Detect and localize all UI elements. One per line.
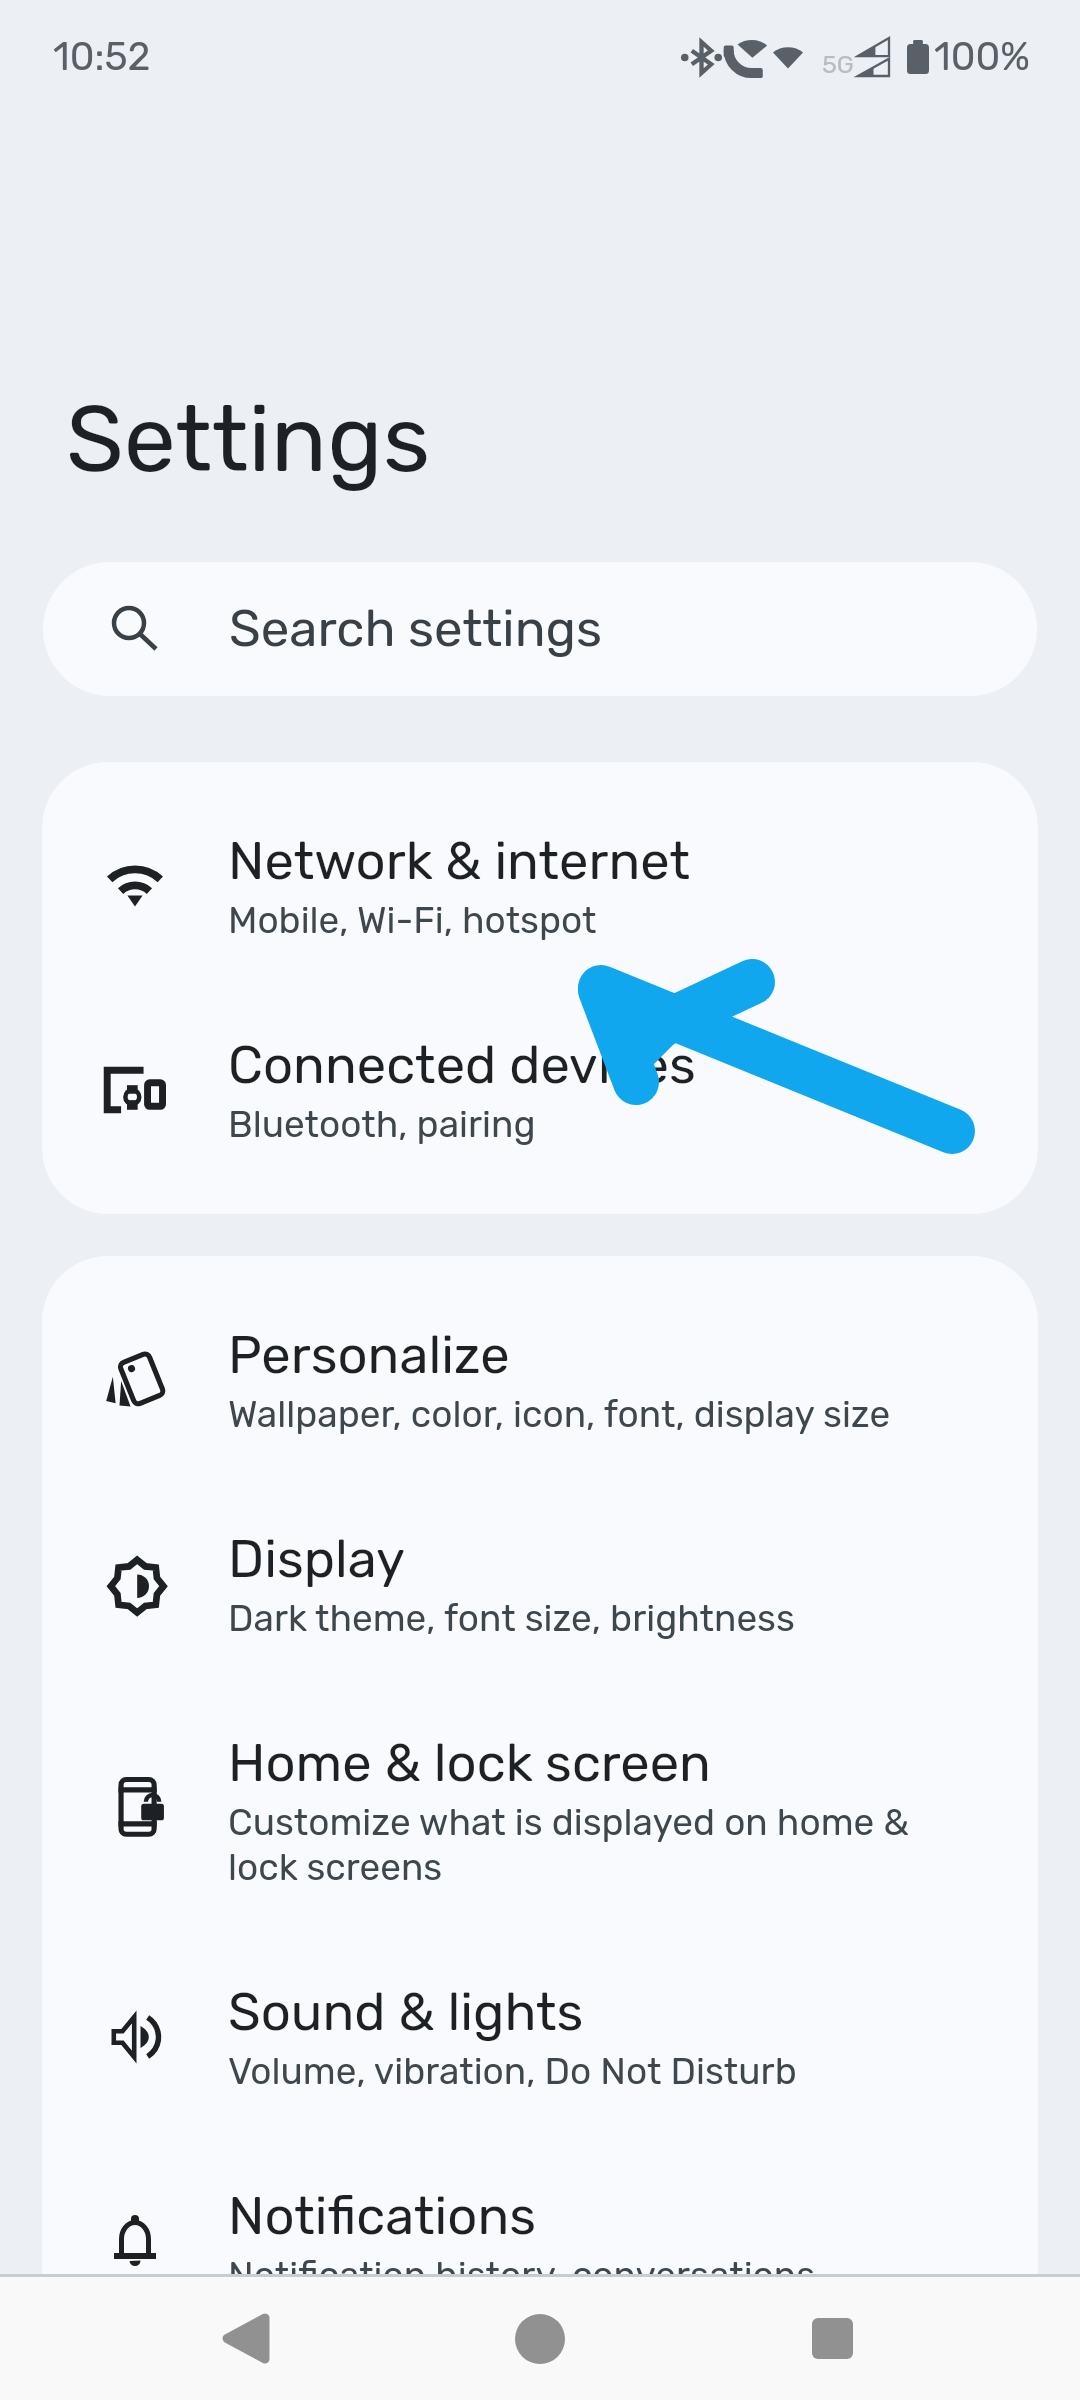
button[interactable]: Home — [467, 2277, 613, 2400]
button[interactable]: Back — [173, 2277, 319, 2400]
staticText: Notification history, conversations — [228, 2253, 816, 2297]
button[interactable]: Search settings — [43, 562, 1037, 696]
button[interactable]: Home & lock screen — [42, 1686, 1038, 1935]
staticText: Network & internet — [228, 830, 690, 892]
staticText: Bluetooth, pairing — [228, 1102, 536, 1146]
staticText: Mobile, Wi-Fi, hotspot — [228, 898, 597, 942]
button[interactable]: Sound & lights — [42, 1935, 1038, 2139]
staticText: Volume, vibration, Do Not Disturb — [228, 2049, 797, 2093]
staticText: 100% — [934, 34, 1030, 80]
button[interactable]: Recent apps — [759, 2277, 905, 2400]
staticText: Notifications — [228, 2185, 537, 2247]
button[interactable]: Display — [42, 1482, 1038, 1686]
staticText: Settings — [66, 384, 431, 494]
button[interactable]: Notifications — [42, 2139, 1038, 2343]
staticText: Display — [228, 1528, 406, 1590]
button[interactable]: Connected devices — [42, 988, 1038, 1192]
staticText: Search settings — [229, 598, 603, 658]
staticText: 10:52 — [53, 34, 151, 80]
button[interactable]: Network & internet — [42, 784, 1038, 988]
staticText: Connected devices — [228, 1034, 696, 1096]
staticText: Sound & lights — [228, 1981, 584, 2043]
button[interactable]: Personalize — [42, 1278, 1038, 1482]
staticText: Wallpaper, color, icon, font, display si… — [228, 1392, 891, 1436]
staticText: Home & lock screen — [228, 1732, 711, 1794]
staticText: Personalize — [228, 1324, 510, 1386]
staticText: Customize what is displayed on home & lo… — [228, 1800, 928, 1889]
staticText: 5G — [822, 50, 854, 80]
staticText: Dark theme, font size, brightness — [228, 1596, 795, 1640]
